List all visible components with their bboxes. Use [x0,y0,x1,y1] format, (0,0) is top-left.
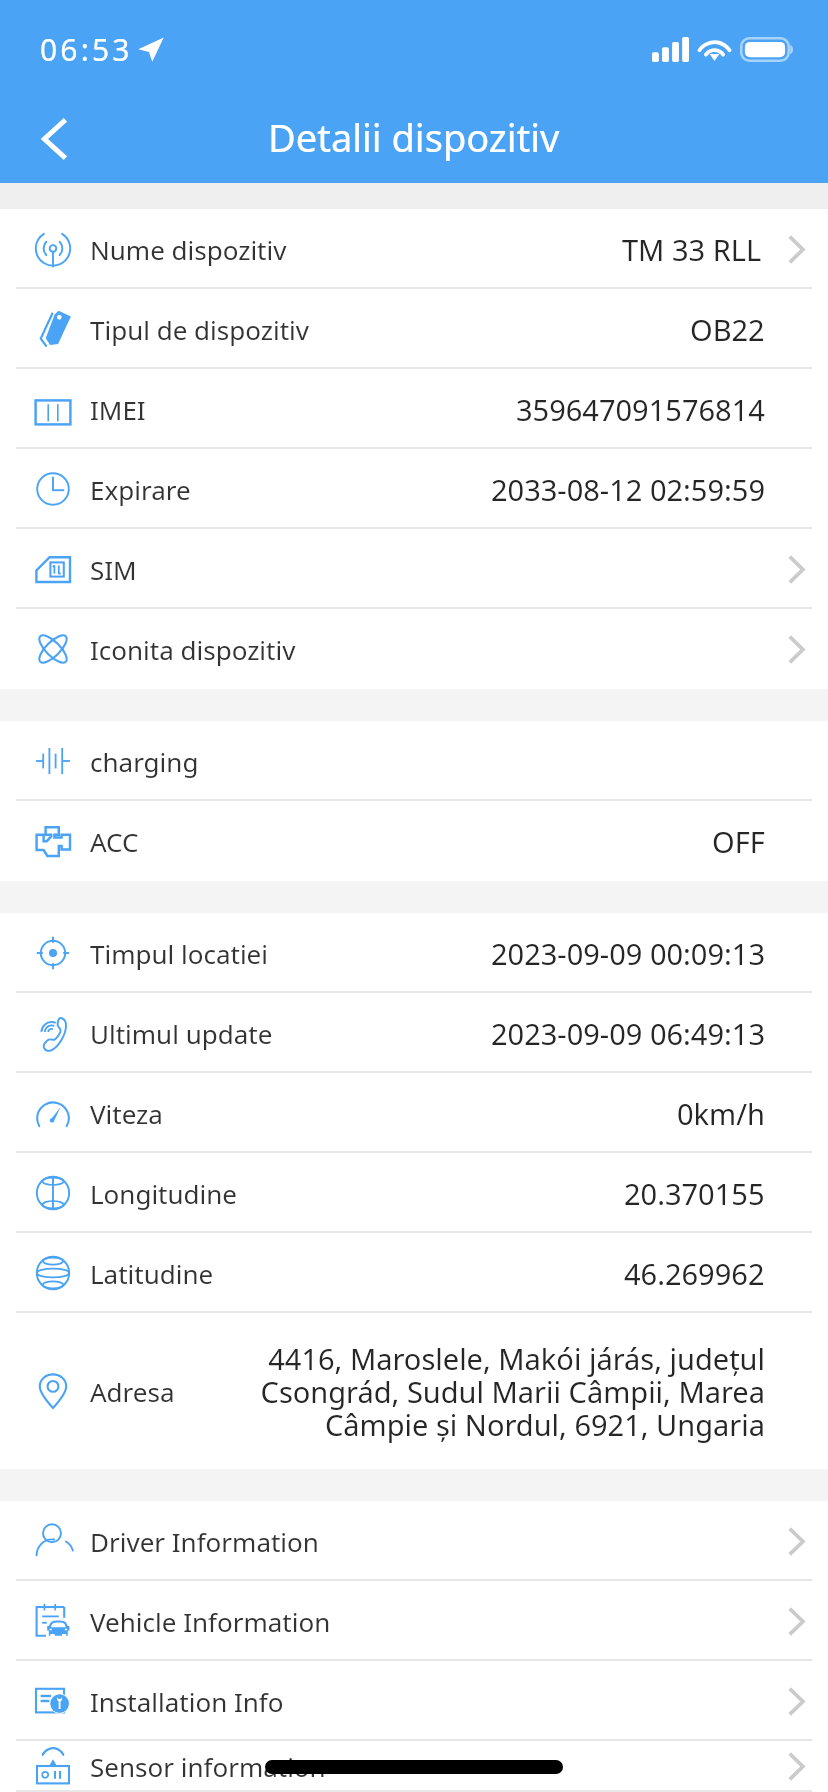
button[interactable]: IMEI [0,369,828,449]
staticText: TM 33 RLL [622,230,762,269]
button[interactable]: Vehicle Information [0,1581,828,1661]
staticText: ACC [90,824,139,859]
button[interactable]: Adresa [0,1313,828,1469]
staticText: 4416, Maroslele, Makói járás, județul Cs… [239,1339,765,1444]
staticText: OB22 [690,310,765,349]
button[interactable]: Expirare [0,449,828,529]
staticText: Adresa [90,1374,175,1409]
button[interactable]: SIM [0,529,828,609]
button[interactable]: charging [0,721,828,801]
button[interactable]: Sensor information [0,1741,828,1792]
button[interactable]: Viteza [0,1073,828,1153]
staticText: 06:53 [40,29,133,70]
staticText: Nume dispozitiv [90,232,287,267]
staticText: Detalii dispozitiv [268,111,560,163]
button[interactable]: ACC [0,801,828,881]
staticText: 46.269962 [624,1254,765,1293]
staticText: 359647091576814 [516,390,765,429]
staticText: Longitudine [90,1176,238,1211]
staticText: Ultimul update [90,1016,273,1051]
staticText: 2023-09-09 06:49:13 [491,1014,765,1053]
staticText: Latitudine [90,1256,214,1291]
button[interactable]: Installation Info [0,1661,828,1741]
button[interactable]: Nume dispozitiv [0,209,828,289]
staticText: IMEI [90,392,146,427]
button[interactable]: Iconita dispozitiv [0,609,828,689]
button[interactable]: Driver Information [0,1501,828,1581]
staticText: 20.370155 [624,1174,765,1213]
staticText: 0km/h [677,1094,765,1133]
button[interactable]: Timpul locatiei [0,913,828,993]
staticText: OFF [712,822,765,861]
button[interactable]: Longitudine [0,1153,828,1233]
staticText: Driver Information [90,1524,319,1559]
staticText: Iconita dispozitiv [90,632,296,667]
staticText: Timpul locatiei [90,936,268,971]
staticText: SIM [90,552,137,587]
staticText: Tipul de dispozitiv [90,312,309,347]
staticText: Viteza [90,1096,163,1131]
button[interactable]: Latitudine [0,1233,828,1313]
staticText: Expirare [90,472,191,507]
staticText: charging [90,744,199,779]
button[interactable]: Ultimul update [0,993,828,1073]
staticText: Vehicle Information [90,1604,331,1639]
staticText: 2023-09-09 00:09:13 [491,934,765,973]
staticText: Installation Info [90,1684,284,1719]
staticText: 2033-08-12 02:59:59 [491,470,765,509]
button[interactable]: Tipul de dispozitiv [0,289,828,369]
button[interactable]: Back [19,104,89,174]
staticText: Sensor information [90,1749,326,1784]
